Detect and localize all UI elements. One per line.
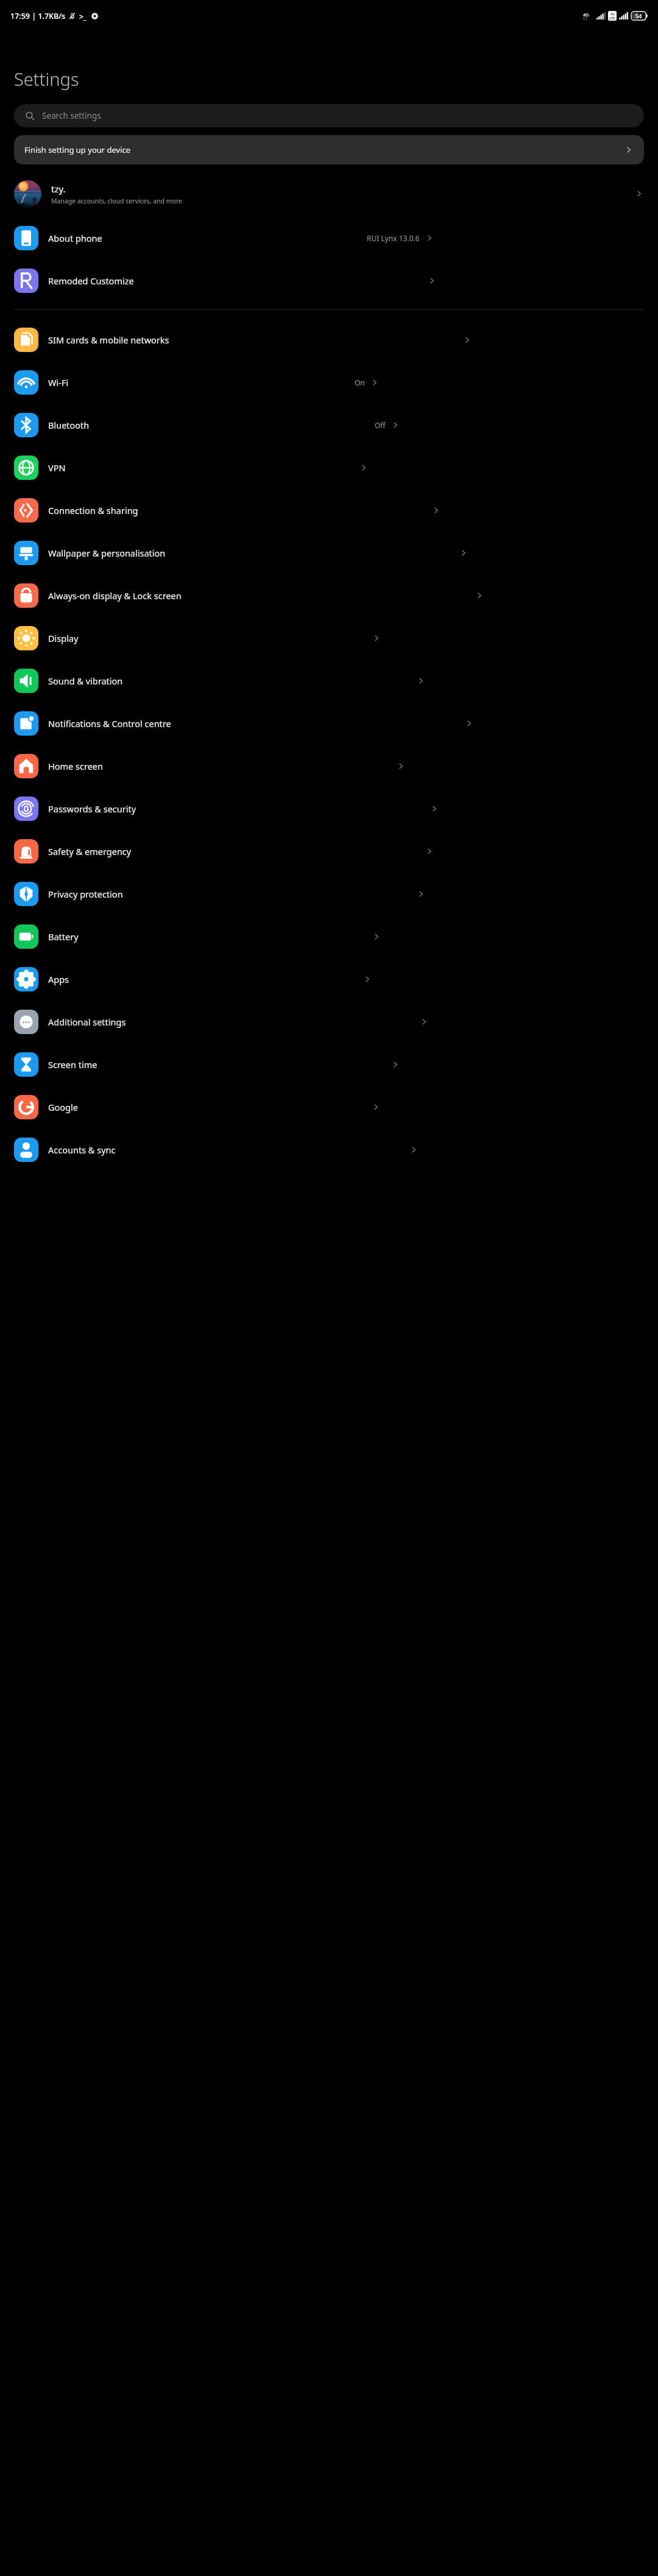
staticText: Search settings: [42, 110, 101, 121]
button[interactable]: Connection & sharing: [0, 489, 658, 532]
staticText: Vo: [610, 12, 615, 16]
button[interactable]: Wallpaper & personalisation: [0, 532, 658, 574]
button[interactable]: Accounts & sync: [0, 1128, 658, 1171]
staticText: Notifications & Control centre: [48, 717, 171, 730]
staticText: RUI Lynx 13.0.6: [367, 233, 420, 243]
staticText: About phone: [48, 232, 102, 244]
staticText: Safety & emergency: [48, 845, 132, 857]
staticText: Google: [48, 1101, 78, 1113]
staticText: LTE: [609, 16, 615, 20]
button[interactable]: Home screen: [0, 745, 658, 787]
staticText: Additional settings: [48, 1016, 126, 1028]
staticText: SIM cards & mobile networks: [48, 334, 169, 346]
staticText: >_: [79, 12, 87, 21]
button[interactable]: Screen time: [0, 1043, 658, 1086]
staticText: Settings: [14, 67, 79, 91]
button[interactable]: VPN: [0, 446, 658, 489]
staticText: On: [355, 378, 365, 387]
button[interactable]: tzy.: [0, 171, 658, 217]
button[interactable]: Notifications & Control centre: [0, 702, 658, 745]
staticText: Wallpaper & personalisation: [48, 547, 166, 559]
staticText: Always-on display & Lock screen: [48, 589, 182, 602]
staticText: VPN: [48, 462, 66, 474]
button[interactable]: Wi-Fi: [0, 361, 658, 404]
staticText: Passwords & security: [48, 803, 136, 815]
staticText: Connection & sharing: [48, 504, 138, 516]
button[interactable]: SIM cards & mobile networks: [0, 318, 658, 361]
staticText: Manage accounts, cloud services, and mor…: [51, 197, 182, 205]
button[interactable]: Battery: [0, 915, 658, 958]
button[interactable]: About phone: [0, 217, 658, 259]
button[interactable]: Bluetooth: [0, 404, 658, 446]
button[interactable]: Finish setting up your device: [14, 135, 644, 164]
button[interactable]: Passwords & security: [0, 787, 658, 830]
staticText: Sound & vibration: [48, 675, 123, 687]
staticText: Wi-Fi: [48, 376, 69, 389]
button[interactable]: Additional settings: [0, 1001, 658, 1043]
staticText: 17:59 | 1.7KB/s: [10, 11, 66, 21]
staticText: Battery: [48, 931, 79, 943]
staticText: Accounts & sync: [48, 1144, 116, 1156]
staticText: tzy.: [51, 183, 66, 195]
staticText: Display: [48, 632, 79, 644]
button[interactable]: Google: [0, 1086, 658, 1128]
button[interactable]: Display: [0, 617, 658, 660]
staticText: Home screen: [48, 760, 103, 772]
staticText: 54: [635, 12, 642, 19]
button[interactable]: Search settings: [14, 104, 644, 127]
staticText: Bluetooth: [48, 419, 90, 431]
staticText: Apps: [48, 973, 69, 985]
button[interactable]: Remoded Customize: [0, 259, 658, 302]
button[interactable]: Sound & vibration: [0, 660, 658, 702]
staticText: Off: [375, 420, 386, 430]
staticText: Finish setting up your device: [24, 144, 624, 155]
staticText: Privacy protection: [48, 888, 123, 900]
button[interactable]: Safety & emergency: [0, 830, 658, 873]
staticText: 4G: [583, 12, 589, 18]
staticText: Screen time: [48, 1058, 97, 1071]
button[interactable]: Always-on display & Lock screen: [0, 574, 658, 617]
staticText: Remoded Customize: [48, 275, 134, 287]
button[interactable]: Apps: [0, 958, 658, 1001]
button[interactable]: Privacy protection: [0, 873, 658, 915]
